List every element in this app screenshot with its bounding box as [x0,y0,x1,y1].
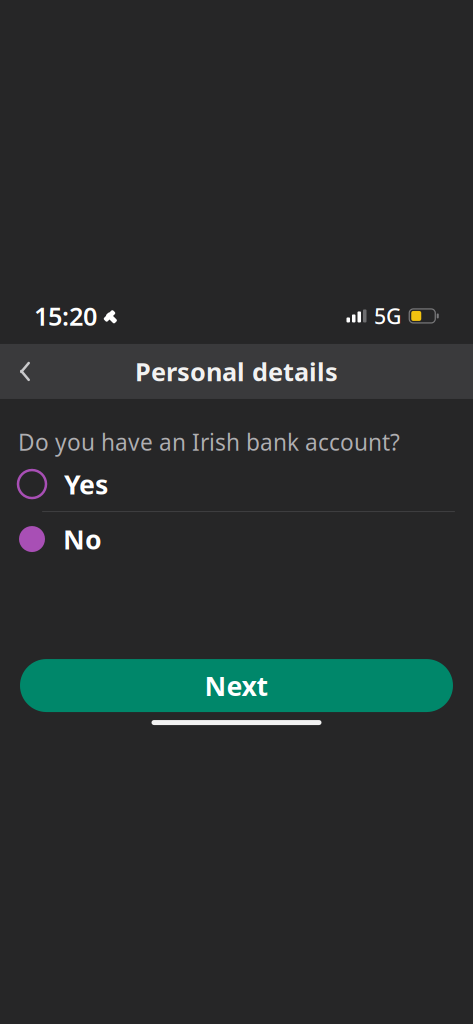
button[interactable]: Back [0,346,50,396]
staticText: Do you have an Irish bank account? [18,427,400,457]
staticText: No [63,521,102,557]
button[interactable]: Yes [0,457,473,511]
staticText: Personal details [135,355,338,388]
staticText: 15:20 [34,299,97,333]
button[interactable]: Next [20,659,453,712]
staticText: Next [204,668,268,703]
staticText: 5G [374,302,402,330]
staticText: Yes [64,466,108,502]
button[interactable]: No [0,512,473,566]
